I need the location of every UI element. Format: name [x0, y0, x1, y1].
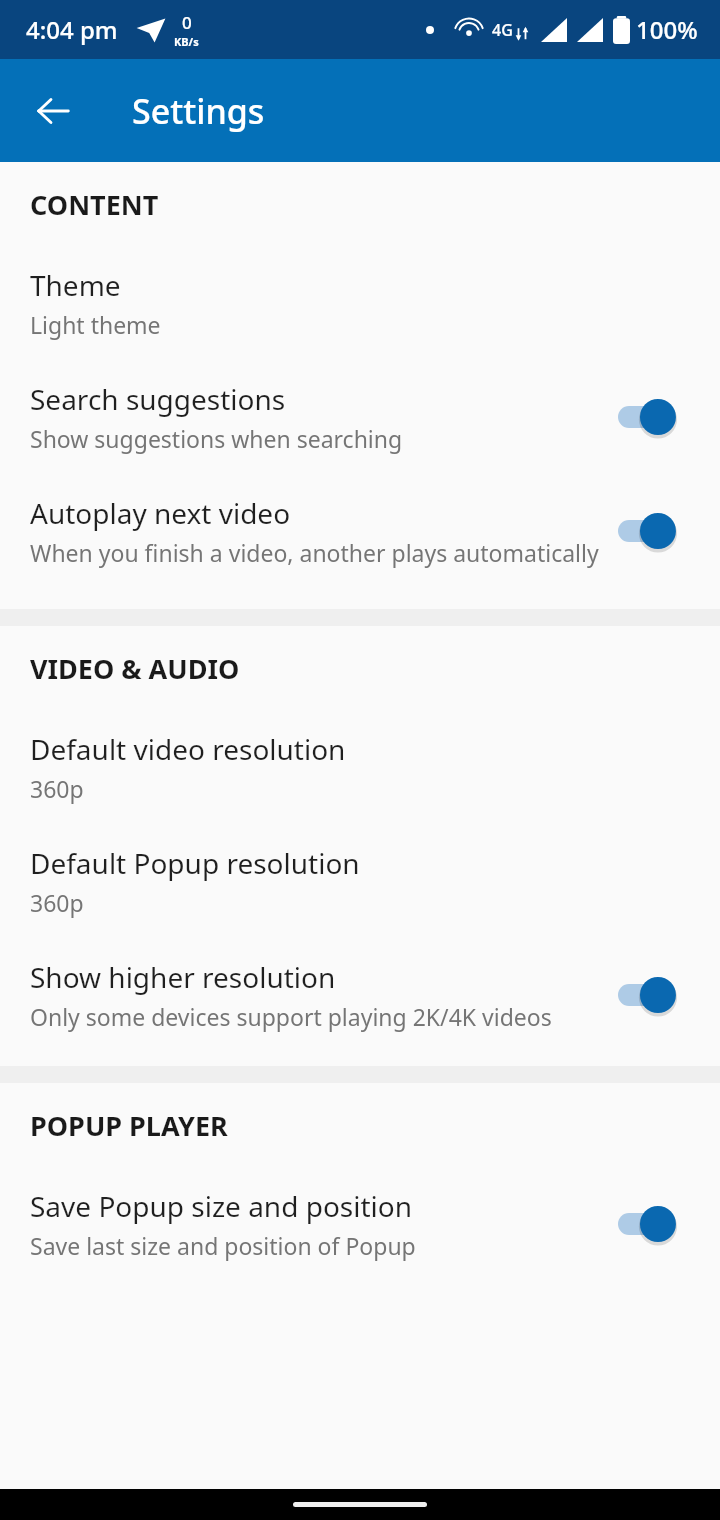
staticText: KB/s: [174, 34, 199, 49]
button[interactable]: Toggle: [618, 971, 690, 1019]
button[interactable]: Toggle: [618, 507, 690, 555]
staticText: Settings: [132, 88, 265, 134]
staticText: Default Popup resolution: [30, 844, 360, 882]
staticText: CONTENT: [30, 186, 159, 223]
button[interactable]: Toggle: [618, 1200, 690, 1248]
button[interactable]: Search suggestions: [0, 360, 720, 474]
button[interactable]: Default Popup resolution: [0, 824, 720, 938]
staticText: Search suggestions: [30, 380, 286, 418]
staticText: Only some devices support playing 2K/4K …: [30, 1001, 552, 1032]
staticText: VIDEO & AUDIO: [30, 650, 240, 687]
button[interactable]: Default video resolution: [0, 710, 720, 824]
staticText: 4:04 pm: [26, 13, 118, 46]
button[interactable]: Theme: [0, 246, 720, 360]
button[interactable]: Autoplay next video: [0, 474, 720, 588]
staticText: 4G: [492, 19, 513, 41]
staticText: 0: [182, 11, 192, 34]
button[interactable]: Show higher resolution: [0, 938, 720, 1052]
staticText: 360p: [30, 887, 84, 918]
staticText: Save last size and position of Popup: [30, 1230, 416, 1261]
button[interactable]: Navigate up: [16, 74, 90, 148]
button[interactable]: Toggle: [618, 393, 690, 441]
staticText: POPUP PLAYER: [30, 1107, 228, 1144]
staticText: 100%: [636, 13, 698, 46]
staticText: Show suggestions when searching: [30, 423, 403, 454]
button[interactable]: Save Popup size and position: [0, 1167, 720, 1281]
staticText: 360p: [30, 773, 84, 804]
staticText: Autoplay next video: [30, 494, 291, 532]
staticText: When you finish a video, another plays a…: [30, 537, 599, 568]
staticText: Show higher resolution: [30, 958, 336, 996]
staticText: Theme: [30, 266, 121, 304]
staticText: Light theme: [30, 309, 161, 340]
staticText: Save Popup size and position: [30, 1187, 413, 1225]
staticText: Default video resolution: [30, 730, 346, 768]
